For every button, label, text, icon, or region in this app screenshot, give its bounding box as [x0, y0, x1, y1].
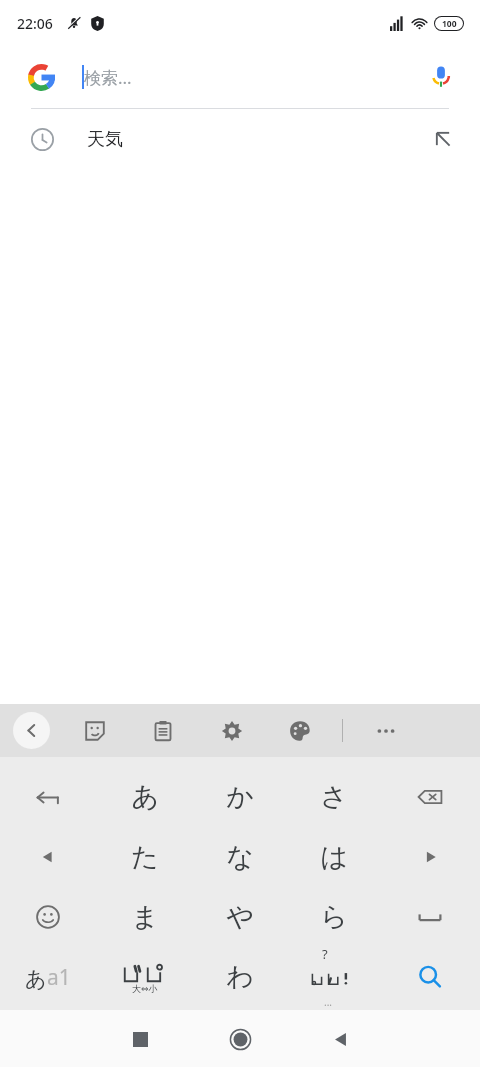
button[interactable]: た — [100, 831, 190, 883]
button[interactable]: Dakuten and small kana — [100, 951, 190, 1003]
button[interactable]: な — [195, 831, 285, 883]
button[interactable]: Back — [316, 1015, 364, 1063]
staticText: 大⇔小 — [132, 983, 158, 994]
staticText: 100 — [442, 18, 457, 30]
button[interactable]: Clipboard — [145, 713, 181, 749]
button[interactable]: 検索... — [0, 46, 480, 108]
button[interactable]: Theme — [282, 713, 318, 749]
staticText: や — [226, 900, 254, 934]
button[interactable]: ら — [289, 891, 379, 943]
staticText: 検索... — [84, 66, 132, 89]
staticText: あ — [25, 966, 47, 992]
staticText: 天気 — [87, 128, 123, 151]
button[interactable]: か — [195, 771, 285, 823]
button[interactable]: Search — [390, 951, 470, 1003]
button[interactable]: Recents — [116, 1015, 164, 1063]
button[interactable]: Emoji — [8, 891, 88, 943]
button[interactable]: Home — [216, 1015, 264, 1063]
staticText: は — [320, 840, 348, 874]
button[interactable]: Punctuation — [289, 951, 379, 1003]
button[interactable]: は — [289, 831, 379, 883]
button[interactable]: や — [195, 891, 285, 943]
button[interactable]: Undo — [8, 771, 88, 823]
button[interactable]: あ — [100, 771, 190, 823]
staticText: か — [226, 780, 254, 814]
button[interactable]: Cursor right — [390, 831, 470, 883]
button[interactable]: Insert suggestion — [432, 128, 454, 150]
staticText: a1 — [47, 963, 71, 992]
button[interactable]: 天気 — [0, 109, 480, 169]
staticText: ら — [320, 900, 348, 934]
button[interactable]: Settings — [214, 713, 250, 749]
staticText: ま — [131, 900, 159, 934]
button[interactable]: Back — [13, 712, 50, 749]
button[interactable]: Space — [390, 891, 470, 943]
button[interactable]: あ — [3, 955, 93, 999]
staticText: わ — [226, 960, 254, 994]
button[interactable]: Backspace — [390, 771, 470, 823]
button[interactable]: わ — [195, 951, 285, 1003]
button[interactable]: ま — [100, 891, 190, 943]
staticText: ... — [324, 995, 333, 1009]
button[interactable]: Stickers — [77, 713, 113, 749]
button[interactable]: More options — [368, 713, 404, 749]
staticText: さ — [320, 780, 348, 814]
staticText: な — [226, 840, 254, 874]
staticText: ? — [322, 945, 328, 963]
staticText: あ — [131, 780, 159, 814]
staticText: た — [131, 840, 159, 874]
button[interactable]: さ — [289, 771, 379, 823]
staticText: 22:06 — [17, 14, 53, 33]
button[interactable]: Cursor left — [8, 831, 88, 883]
button[interactable]: Voice search — [428, 64, 454, 90]
